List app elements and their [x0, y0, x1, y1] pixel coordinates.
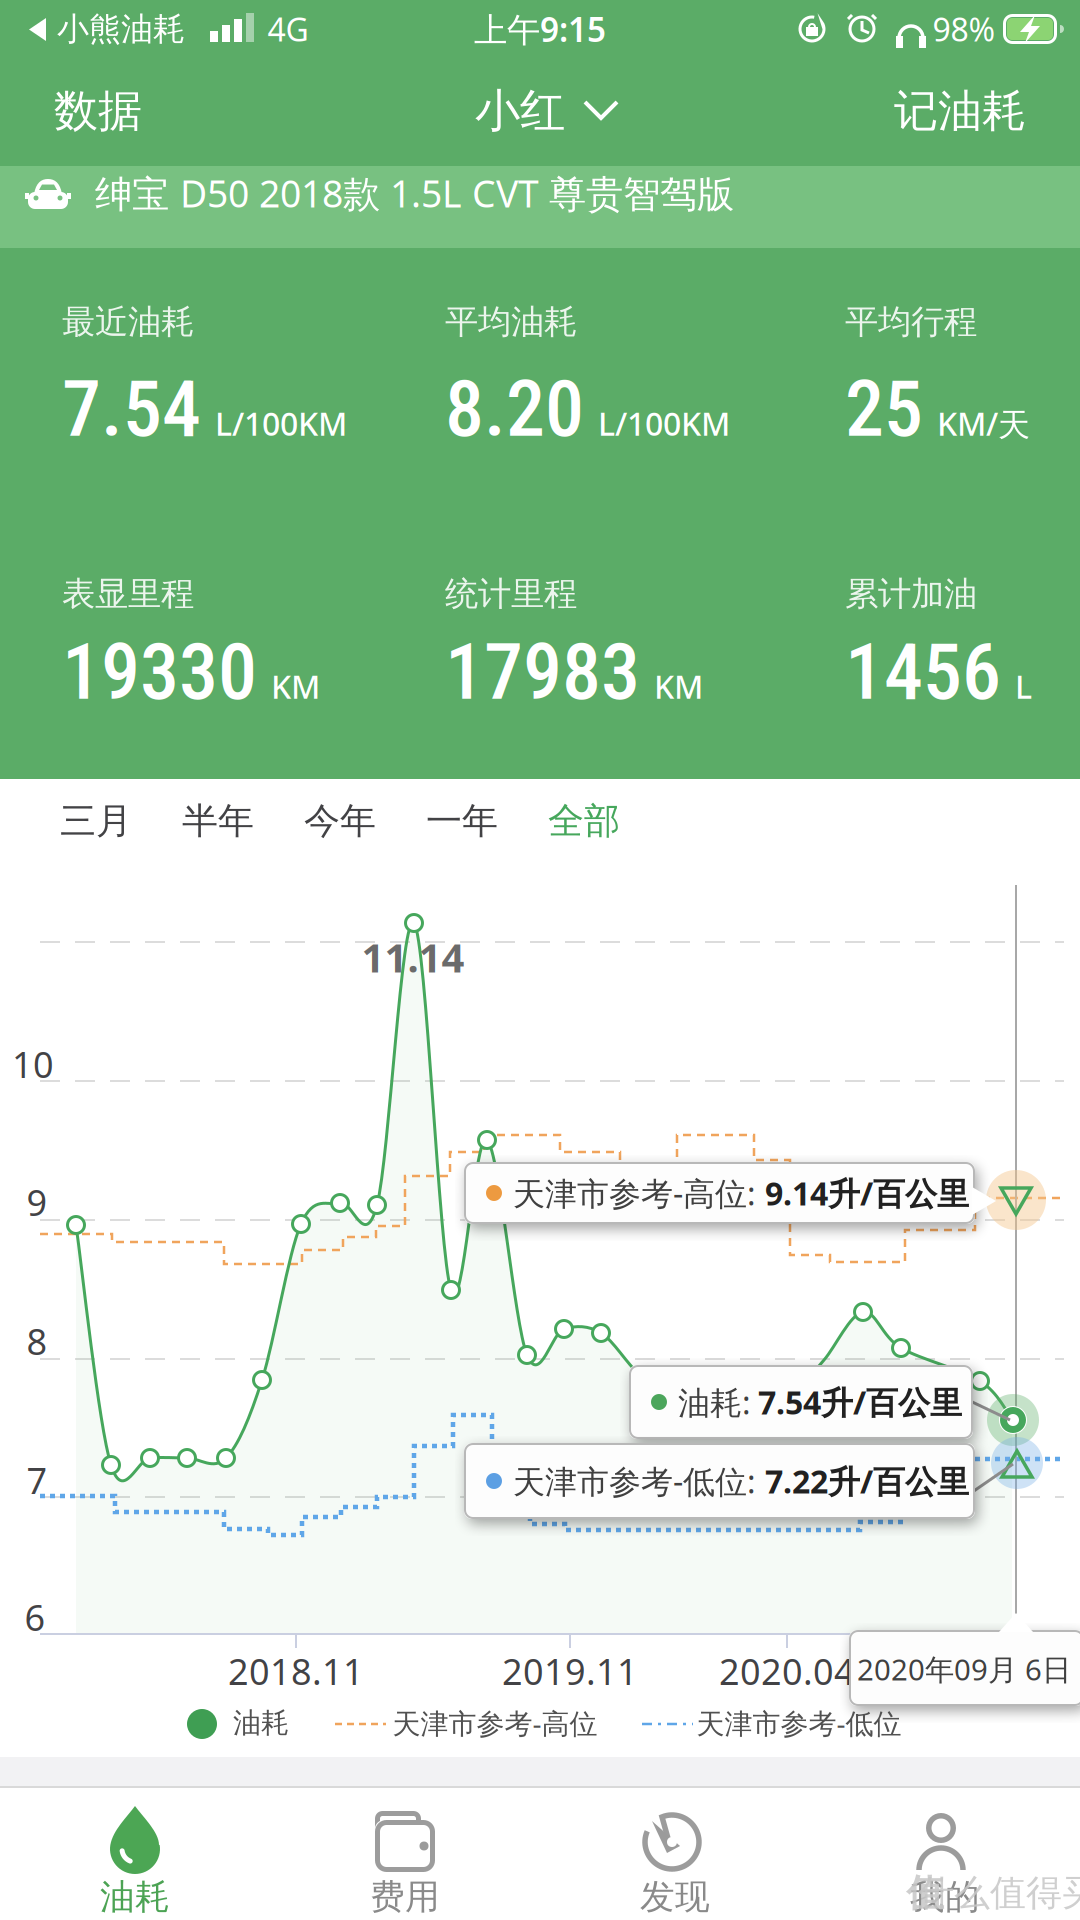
staticText: 2020.04: [719, 1647, 855, 1695]
staticText: 天津市参考-低位:: [513, 1460, 764, 1502]
staticText: 7: [26, 1456, 47, 1504]
staticText: 上午9:15: [474, 7, 606, 51]
staticText: 油耗: [233, 1706, 289, 1740]
staticText: 一年: [426, 799, 498, 843]
button[interactable]: 一年: [407, 786, 517, 856]
staticText: 值: [906, 1870, 943, 1916]
staticText: L: [1015, 665, 1032, 707]
button[interactable]: 我的: [810, 1789, 1080, 1920]
staticText: 平均油耗: [445, 301, 577, 342]
staticText: 半年: [182, 799, 254, 843]
staticText: 统计里程: [445, 573, 577, 614]
staticText: 17983: [445, 626, 640, 718]
staticText: 全部: [548, 799, 620, 843]
button[interactable]: 今年: [285, 786, 395, 856]
staticText: 费用: [370, 1876, 440, 1918]
staticText: 累计加油: [845, 573, 977, 614]
staticText: 天津市参考-高位: [392, 1704, 597, 1742]
staticText: KM: [654, 665, 703, 707]
staticText: KM: [271, 665, 320, 707]
staticText: 2019.11: [502, 1647, 638, 1695]
staticText: 绅宝 D50 2018款 1.5L CVT 尊贵智驾版: [95, 168, 734, 218]
staticText: 数据: [54, 84, 142, 138]
staticText: 25: [845, 363, 923, 455]
button[interactable]: 记油耗: [850, 66, 1070, 156]
staticText: 9.14升/百公里: [765, 1172, 969, 1214]
staticText: 小红: [475, 83, 565, 139]
staticText: 平均行程: [845, 301, 977, 342]
staticText: 什么值得买: [918, 1871, 1080, 1915]
staticText: 今年: [304, 799, 376, 843]
staticText: 2020年09月 6日: [857, 1649, 1071, 1688]
staticText: 1456: [845, 626, 1001, 718]
staticText: 8.20: [445, 363, 584, 455]
button[interactable]: 数据: [8, 66, 188, 156]
staticText: 记油耗: [894, 84, 1026, 138]
staticText: 2018.11: [228, 1647, 364, 1695]
button[interactable]: 全部: [529, 786, 639, 856]
staticText: L/100KM: [215, 402, 347, 444]
staticText: 8: [26, 1317, 47, 1365]
staticText: 油耗: [100, 1876, 170, 1918]
staticText: 11.14: [361, 930, 464, 983]
staticText: 98%: [932, 8, 995, 50]
button[interactable]: 半年: [163, 786, 273, 856]
button[interactable]: 绅宝 D50 2018款 1.5L CVT 尊贵智驾版: [0, 166, 1080, 248]
staticText: 6: [24, 1593, 45, 1641]
staticText: 三月: [60, 799, 132, 843]
staticText: 7.22升/百公里: [765, 1460, 969, 1502]
staticText: 10: [12, 1040, 54, 1088]
staticText: L/100KM: [598, 402, 730, 444]
staticText: 天津市参考-低位: [696, 1704, 901, 1742]
staticText: 表显里程: [62, 573, 194, 614]
staticText: 我的: [910, 1876, 980, 1918]
staticText: 油耗:: [678, 1381, 759, 1423]
staticText: 7.54: [62, 363, 201, 455]
button[interactable]: 三月: [41, 786, 151, 856]
staticText: 9: [26, 1178, 47, 1226]
button[interactable]: 费用: [270, 1789, 540, 1920]
staticText: KM/天: [937, 402, 1030, 445]
staticText: 发现: [640, 1876, 710, 1918]
staticText: 7.54升/百公里: [758, 1381, 962, 1423]
staticText: 小熊油耗: [57, 9, 185, 49]
button[interactable]: 油耗: [0, 1789, 270, 1920]
button[interactable]: 发现: [540, 1789, 810, 1920]
staticText: 天津市参考-高位:: [513, 1172, 764, 1214]
staticText: 4G: [267, 8, 308, 50]
button[interactable]: 切换车辆: [445, 66, 665, 156]
staticText: 19330: [62, 626, 257, 718]
staticText: 最近油耗: [62, 301, 194, 342]
